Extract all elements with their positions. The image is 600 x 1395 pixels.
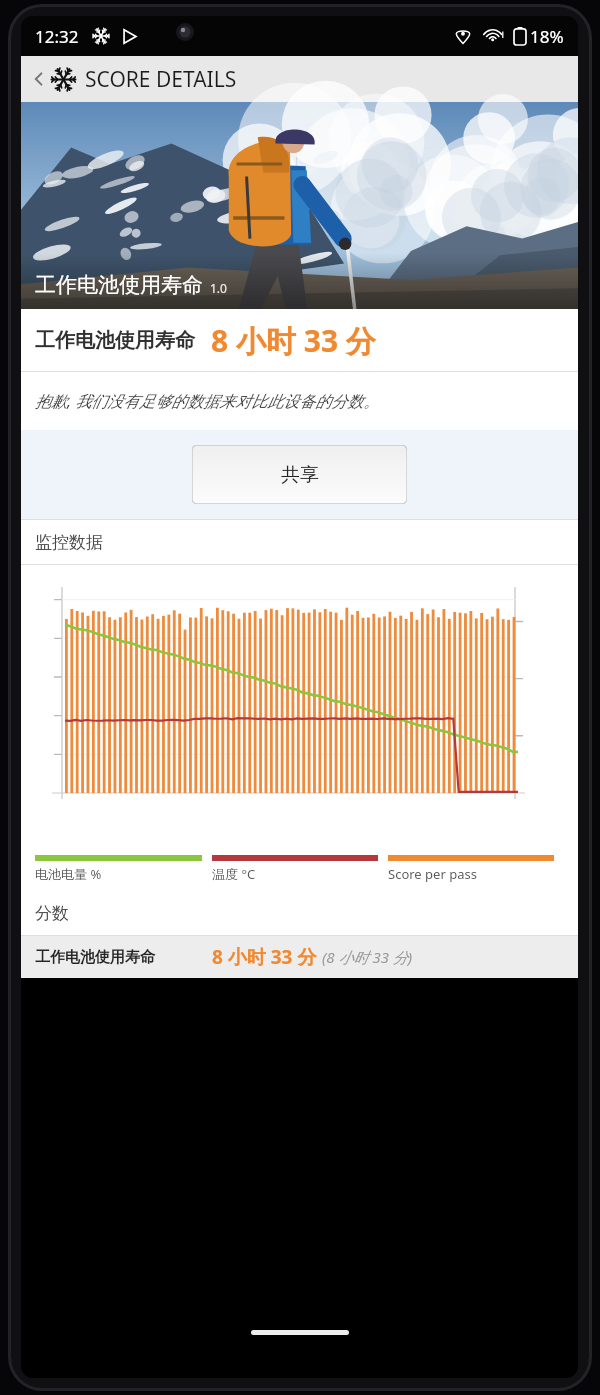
staticText: 1.0: [210, 280, 227, 296]
staticText: 18%: [530, 25, 564, 48]
staticText: SCORE DETAILS: [85, 65, 237, 94]
button[interactable]: 共享: [192, 445, 407, 504]
staticText: (8 小时 33 分): [322, 947, 413, 967]
staticText: 工作电池使用寿命: [35, 272, 203, 298]
staticText: 工作电池使用寿命: [35, 328, 195, 353]
staticText: 8 小时 33 分: [212, 944, 317, 970]
staticText: 电池电量 %: [35, 865, 102, 883]
staticText: 抱歉, 我们没有足够的数据来对比此设备的分数。: [35, 390, 380, 412]
button[interactable]: 工作电池使用寿命: [21, 936, 578, 978]
staticText: 工作电池使用寿命: [35, 948, 155, 967]
staticText: 共享: [281, 463, 319, 487]
staticText: 12:32: [35, 25, 79, 48]
button[interactable]: Back: [21, 56, 578, 102]
staticText: 8 小时 33 分: [211, 320, 376, 361]
staticText: Score per pass: [388, 865, 477, 883]
staticText: 温度 °C: [212, 865, 256, 883]
other: Back: [29, 69, 49, 89]
staticText: 监控数据: [35, 532, 103, 553]
staticText: 分数: [35, 903, 69, 924]
